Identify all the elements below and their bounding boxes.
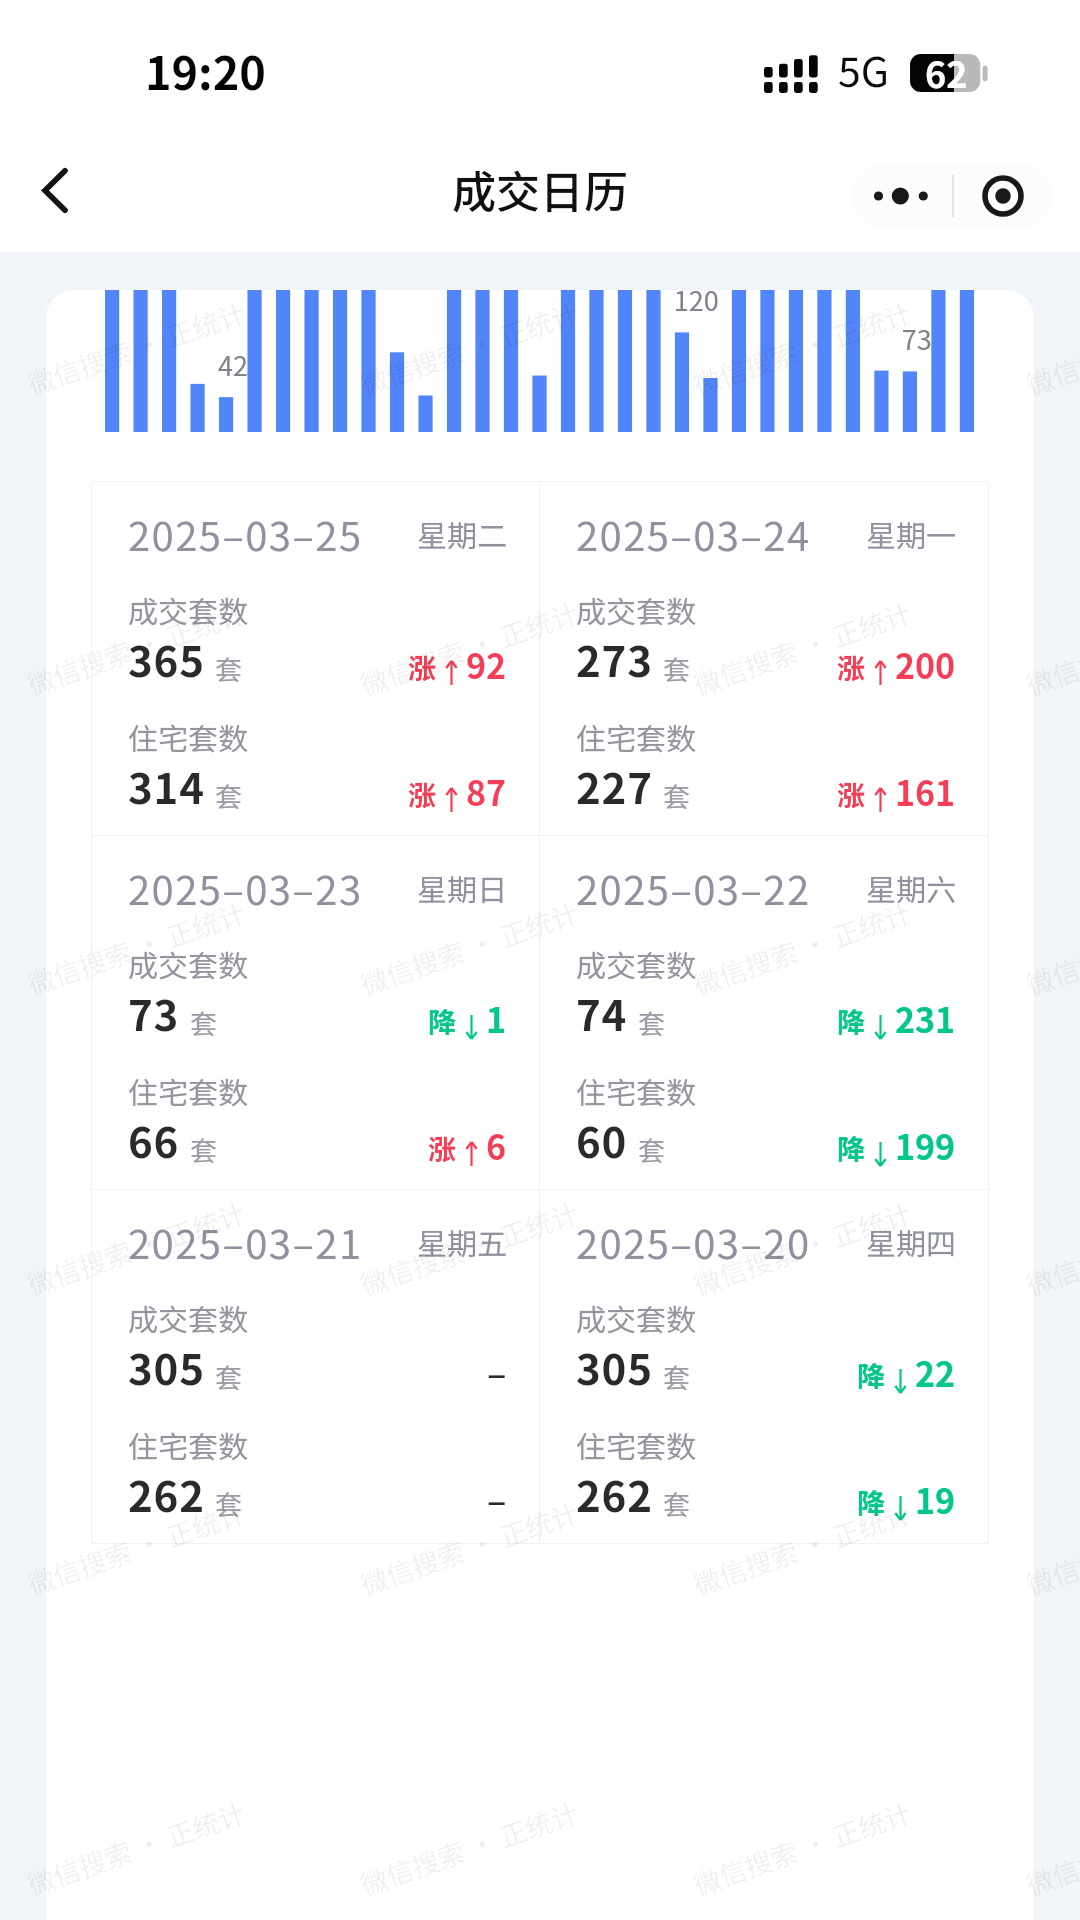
staticText: 273 [576,637,653,687]
staticText: 住宅套数 [128,722,248,757]
staticText: 2025–03–20 [576,1221,811,1268]
button[interactable]: 2025–03–23 [92,836,539,1189]
staticText: 星期日 [417,873,507,908]
staticText: 套 [215,781,242,813]
staticText: 199 [895,1128,956,1168]
button[interactable]: 2025–03–21 [92,1190,539,1543]
staticText: 降 [837,1007,866,1040]
button[interactable]: More options [852,163,1052,229]
staticText: 161 [895,774,956,814]
staticText: 73 [128,991,180,1041]
button[interactable]: 2025–03–20 [540,1190,988,1543]
staticText: 365 [128,637,205,687]
staticText: 涨 [408,653,437,686]
staticText: 成交日历 [452,166,628,218]
staticText: 星期六 [866,873,956,908]
staticText: 套 [638,1008,665,1040]
staticText: 60 [576,1118,628,1168]
staticText: 套 [663,654,690,686]
staticText: 2025–03–21 [128,1221,363,1268]
staticText: 住宅套数 [576,1076,696,1111]
staticText: 涨 [837,780,866,813]
staticText: 降 [857,1488,886,1521]
staticText: 成交套数 [576,1303,696,1338]
staticText: 200 [895,647,956,687]
staticText: 套 [663,1362,690,1394]
button[interactable]: 2025–03–22 [540,836,988,1189]
staticText: – [487,1353,507,1395]
staticText: 5G [838,48,890,96]
staticText: 套 [638,1135,665,1167]
staticText: 305 [576,1345,653,1395]
staticText: 92 [466,647,507,687]
staticText: 2025–03–25 [128,513,363,560]
staticText: 套 [215,654,242,686]
staticText: 22 [915,1355,956,1395]
staticText: 住宅套数 [576,1430,696,1465]
staticText: 6 [486,1128,507,1168]
staticText: 2025–03–24 [576,513,811,560]
staticText: 87 [466,774,507,814]
staticText: 66 [128,1118,180,1168]
staticText: – [487,1480,507,1522]
staticText: 降 [837,1134,866,1167]
staticText: 62 [925,54,968,92]
staticText: 套 [215,1362,242,1394]
staticText: 套 [190,1135,217,1167]
staticText: 成交套数 [128,1303,248,1338]
staticText: 2025–03–22 [576,867,811,914]
staticText: 74 [576,991,628,1041]
button[interactable]: 2025–03–24 [540,482,988,835]
staticText: 降 [857,1361,886,1394]
staticText: 涨 [408,780,437,813]
staticText: 262 [576,1472,653,1522]
staticText: 涨 [837,653,866,686]
staticText: 涨 [428,1134,457,1167]
staticText: 314 [128,764,205,814]
staticText: 套 [663,1489,690,1521]
button[interactable]: 2025–03–25 [92,482,539,835]
staticText: 套 [215,1489,242,1521]
staticText: 住宅套数 [576,722,696,757]
staticText: 成交套数 [576,595,696,630]
staticText: 19 [915,1482,956,1522]
staticText: 星期五 [417,1227,507,1262]
staticText: 星期一 [866,519,956,554]
staticText: 成交套数 [576,949,696,984]
staticText: 住宅套数 [128,1076,248,1111]
staticText: 降 [428,1007,457,1040]
staticText: 住宅套数 [128,1430,248,1465]
staticText: 2025–03–23 [128,867,363,914]
staticText: 套 [190,1008,217,1040]
staticText: 1 [486,1001,507,1041]
staticText: 19:20 [145,47,266,100]
staticText: 227 [576,764,653,814]
staticText: 305 [128,1345,205,1395]
button[interactable]: Back [14,150,94,230]
staticText: 星期二 [417,519,507,554]
staticText: 262 [128,1472,205,1522]
staticText: 231 [895,1001,956,1041]
staticText: 成交套数 [128,595,248,630]
staticText: 套 [663,781,690,813]
staticText: 星期四 [866,1227,956,1262]
staticText: 成交套数 [128,949,248,984]
